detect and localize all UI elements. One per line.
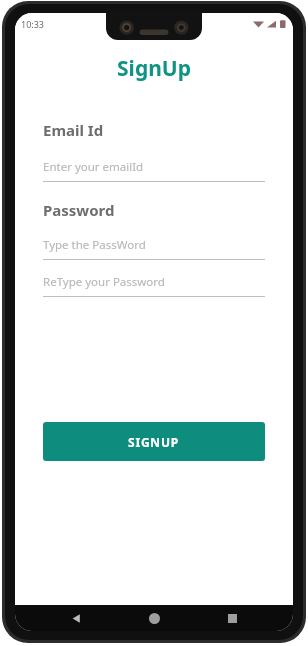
button[interactable]: Type the PassWord xyxy=(43,237,265,260)
staticText: SignUp xyxy=(15,54,293,83)
button[interactable]: Back xyxy=(65,607,87,629)
button[interactable]: Recent apps xyxy=(221,607,243,629)
button[interactable]: SIGNUP xyxy=(43,422,265,461)
staticText: ReType your Password xyxy=(43,274,165,290)
button[interactable]: Home xyxy=(143,607,165,629)
staticText: Email Id xyxy=(43,120,104,140)
button[interactable]: Enter your emailId xyxy=(43,159,265,182)
staticText: Password xyxy=(43,200,115,220)
staticText: 10:33 xyxy=(21,18,45,30)
button[interactable]: ReType your Password xyxy=(43,274,265,297)
staticText: Type the PassWord xyxy=(43,237,146,253)
staticText: Enter your emailId xyxy=(43,159,144,175)
staticText: SIGNUP xyxy=(128,434,180,450)
